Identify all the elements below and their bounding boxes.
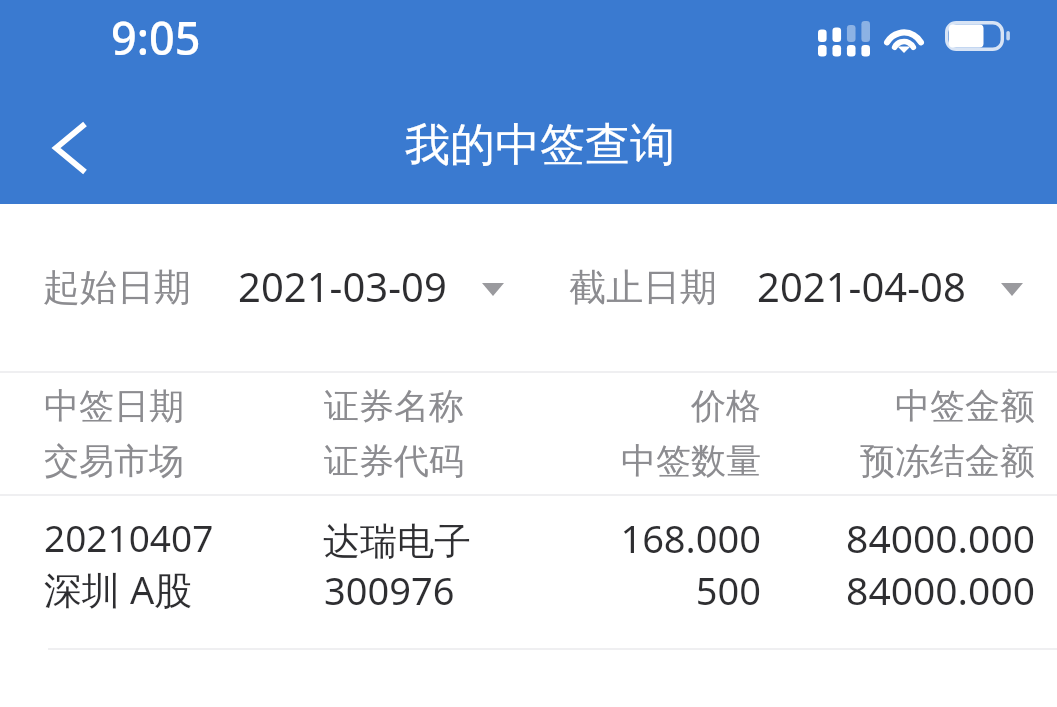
staticText: 我的中签查询: [405, 117, 675, 174]
staticText: 中签数量: [621, 439, 761, 483]
staticText: 达瑞电子: [323, 518, 471, 565]
staticText: 证券代码: [324, 439, 464, 483]
staticText: 300976: [324, 564, 455, 616]
staticText: 起始日期: [43, 264, 191, 311]
staticText: 84000.000: [846, 511, 1035, 564]
staticText: 500: [695, 564, 761, 616]
other: Battery: [945, 21, 1011, 52]
staticText: 预冻结金额: [860, 439, 1035, 483]
staticText: 价格: [691, 384, 761, 428]
button[interactable]: Back: [30, 108, 110, 188]
other: Mobile signal strength: [818, 19, 870, 55]
staticText: 交易市场: [44, 439, 184, 483]
staticText: 深圳 A股: [44, 563, 193, 615]
button[interactable]: 截止日期: [528, 204, 1057, 371]
staticText: 84000.000: [846, 563, 1035, 616]
staticText: 证券名称: [324, 384, 464, 428]
staticText: 20210407: [44, 512, 214, 562]
staticText: 中签金额: [895, 384, 1035, 428]
button[interactable]: 起始日期: [0, 204, 528, 371]
staticText: 中签日期: [44, 384, 184, 428]
staticText: 2021-03-09: [238, 259, 447, 313]
staticText: 截止日期: [569, 264, 717, 311]
staticText: 168.000: [620, 512, 761, 564]
staticText: 9:05: [111, 7, 201, 68]
staticText: 2021-04-08: [757, 259, 966, 313]
other: Wi-Fi connected: [882, 20, 926, 53]
button[interactable]: 20210407: [0, 496, 1057, 649]
